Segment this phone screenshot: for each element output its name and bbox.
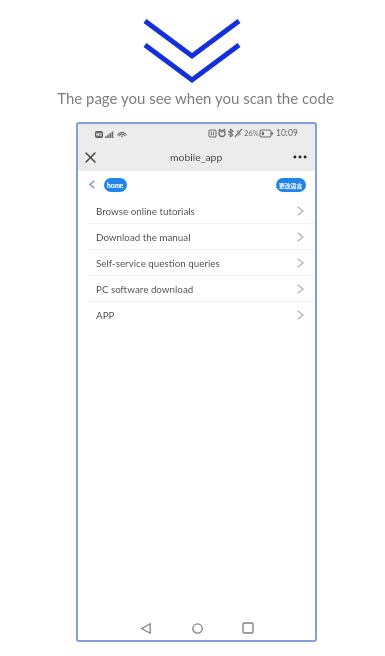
- button[interactable]: More options: [290, 147, 310, 167]
- staticText: The page you see when you scan the code: [3, 89, 385, 107]
- button[interactable]: PC software download: [77, 276, 316, 302]
- staticText: PC software download: [96, 283, 194, 295]
- button[interactable]: Close: [80, 147, 100, 167]
- button[interactable]: Download the manual: [77, 224, 316, 250]
- staticText: home: [107, 181, 124, 189]
- button[interactable]: Back: [133, 615, 159, 641]
- button[interactable]: Home: [184, 615, 210, 641]
- staticText: Browse online tutorials: [96, 205, 195, 217]
- button[interactable]: APP: [77, 302, 316, 328]
- button[interactable]: 更改语言: [276, 178, 306, 192]
- staticText: 26%: [244, 129, 259, 138]
- button[interactable]: Self-service question queries: [77, 250, 316, 276]
- staticText: mobile_app: [170, 151, 223, 163]
- button[interactable]: home: [104, 178, 127, 192]
- button[interactable]: Back: [83, 176, 100, 193]
- button[interactable]: Browse online tutorials: [77, 198, 316, 224]
- staticText: Self-service question queries: [96, 257, 220, 269]
- staticText: 10:09: [276, 128, 298, 138]
- staticText: APP: [96, 309, 115, 321]
- staticText: Download the manual: [96, 231, 191, 243]
- button[interactable]: Recents: [235, 615, 261, 641]
- staticText: 更改语言: [279, 181, 303, 189]
